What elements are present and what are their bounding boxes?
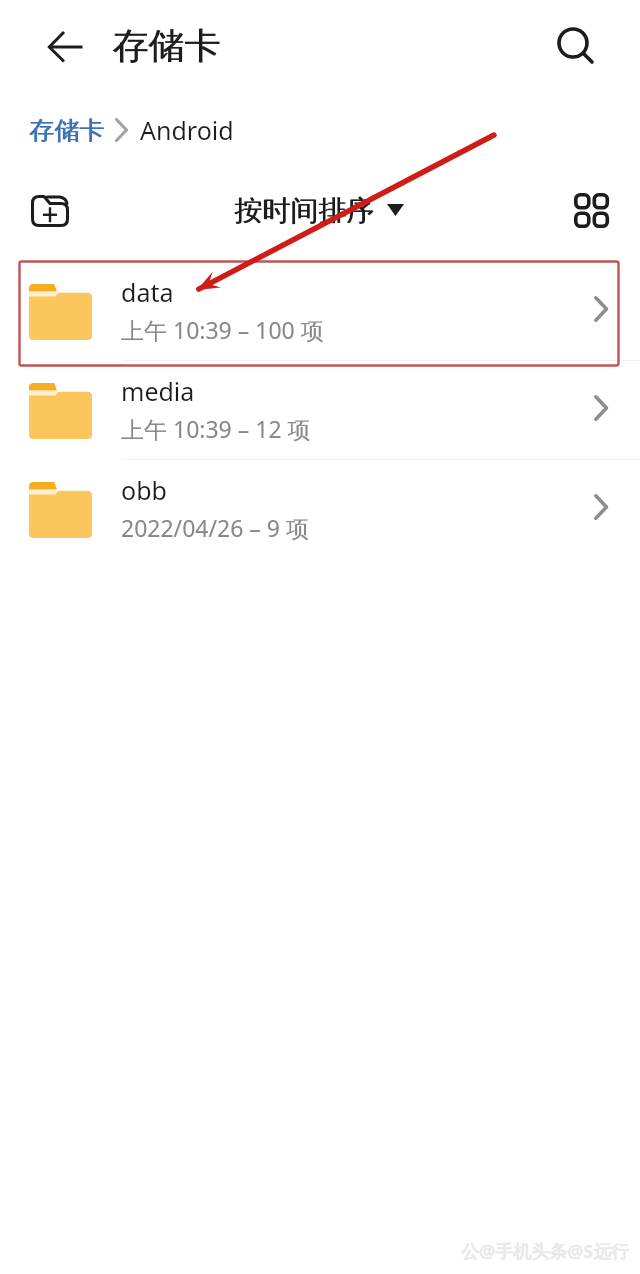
staticText: 按时间排序 <box>234 193 374 228</box>
staticText: 上午 10:39 – 12 项 <box>121 413 311 444</box>
staticText: data <box>121 275 174 309</box>
button[interactable]: 按时间排序 <box>234 188 404 232</box>
staticText: 存储卡 <box>30 115 105 146</box>
staticText: 存储卡 <box>113 23 221 68</box>
staticText: 存储卡 <box>29 115 104 146</box>
button[interactable]: Grid view <box>566 185 616 235</box>
button[interactable]: media <box>0 362 640 461</box>
button[interactable]: New folder <box>22 186 78 236</box>
staticText: 公@手机头条@S远行 <box>461 1239 630 1264</box>
staticText: 按时间排序 <box>235 193 375 228</box>
button[interactable]: Search <box>548 18 604 74</box>
button[interactable]: 存储卡 <box>29 115 104 146</box>
staticText: 存储卡 <box>112 23 220 68</box>
button[interactable]: obb <box>0 461 640 560</box>
staticText: 2022/04/26 – 9 项 <box>121 512 309 543</box>
staticText: media <box>121 374 195 408</box>
button[interactable]: Android <box>140 113 234 147</box>
button[interactable]: data <box>0 263 640 362</box>
staticText: 上午 10:39 – 100 项 <box>121 314 324 345</box>
button[interactable]: Back <box>36 23 92 71</box>
staticText: obb <box>121 473 167 507</box>
